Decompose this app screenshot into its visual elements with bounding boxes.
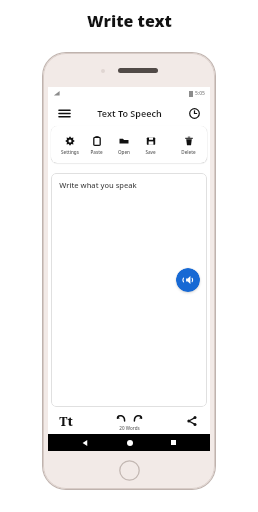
button[interactable]: Menu xyxy=(55,104,73,122)
staticText: 20 Words xyxy=(119,425,140,431)
staticText: Delete xyxy=(181,149,196,155)
button[interactable]: Settings xyxy=(56,133,83,157)
button[interactable]: Share xyxy=(182,411,202,431)
button[interactable]: Paste xyxy=(83,133,110,157)
staticText: 5:05 xyxy=(195,90,205,97)
button[interactable]: History xyxy=(185,104,203,122)
button[interactable]: Delete xyxy=(175,133,202,157)
button[interactable]: Back xyxy=(77,435,92,450)
button[interactable]: Home xyxy=(122,435,137,450)
button[interactable]: Undo xyxy=(114,411,127,424)
staticText: Write what you speak xyxy=(59,180,137,190)
button[interactable]: Redo xyxy=(131,411,144,424)
button[interactable]: Text format xyxy=(56,411,76,431)
staticText: Tt xyxy=(59,413,73,429)
button[interactable]: Speak xyxy=(176,268,200,292)
button[interactable]: Open xyxy=(110,133,137,157)
staticText: Settings xyxy=(61,149,79,155)
button[interactable]: Write what you speak xyxy=(51,173,207,407)
staticText: Paste xyxy=(90,149,103,155)
button[interactable]: Recents xyxy=(166,435,181,450)
staticText: Text To Speech xyxy=(97,107,162,119)
staticText: Save xyxy=(145,149,156,155)
button[interactable]: Save xyxy=(137,133,164,157)
staticText: Write text xyxy=(87,10,172,32)
staticText: Open xyxy=(118,149,130,155)
